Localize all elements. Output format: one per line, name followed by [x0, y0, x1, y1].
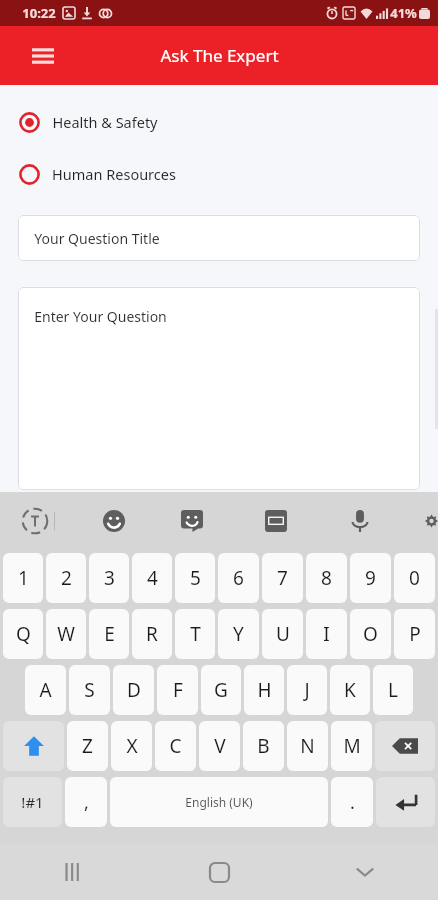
staticText: Z [82, 733, 93, 759]
staticText: V [214, 733, 226, 759]
staticText: . [350, 790, 355, 815]
staticText: E [104, 621, 115, 647]
button[interactable]: Q [3, 609, 43, 659]
staticText: A [39, 677, 52, 703]
staticText: I [323, 621, 330, 647]
button[interactable]: D [113, 665, 154, 715]
button[interactable]: GIF [257, 502, 295, 540]
staticText: 6 [233, 565, 244, 591]
button[interactable]: Home [146, 844, 292, 900]
staticText: 41% [390, 4, 417, 22]
button[interactable]: G [201, 665, 241, 715]
button[interactable]: 2 [46, 553, 86, 603]
staticText: U [276, 621, 290, 647]
button[interactable]: S [69, 665, 110, 715]
button[interactable]: Keyboard settings [425, 502, 438, 540]
button[interactable]: P [394, 609, 435, 659]
button[interactable]: W [46, 609, 86, 659]
button[interactable]: 4 [132, 553, 172, 603]
button[interactable]: Z [67, 721, 108, 771]
staticText: O [363, 621, 378, 647]
staticText: Enter Your Question [34, 307, 167, 326]
staticText: 0 [409, 565, 420, 591]
staticText: 1 [18, 565, 29, 591]
staticText: English (UK) [185, 794, 253, 810]
button[interactable]: F [157, 665, 198, 715]
staticText: 5 [190, 565, 201, 591]
button[interactable]: Stickers [173, 502, 211, 540]
button[interactable]: 1 [3, 553, 43, 603]
staticText: K [344, 677, 356, 703]
staticText: S [84, 677, 95, 703]
staticText: C [169, 733, 182, 759]
button[interactable]: Your Question Title [18, 215, 420, 261]
staticText: Human Resources [52, 164, 176, 184]
button[interactable]: Open navigation menu [22, 35, 64, 77]
button[interactable]: 8 [306, 553, 347, 603]
staticText: F [173, 677, 183, 703]
button[interactable]: 7 [262, 553, 303, 603]
button[interactable]: Emoji [95, 502, 133, 540]
button[interactable]: V [199, 721, 240, 771]
button[interactable]: J [287, 665, 327, 715]
staticText: Ask The Expert [160, 44, 279, 67]
staticText: H [257, 677, 272, 703]
button[interactable]: X [111, 721, 152, 771]
staticText: 9 [365, 565, 376, 591]
staticText: 7 [277, 565, 288, 591]
staticText: T [190, 621, 201, 647]
button[interactable]: !#1 [3, 777, 62, 827]
staticText: G [214, 677, 228, 703]
staticText: R [146, 621, 158, 647]
button[interactable]: , [65, 777, 107, 827]
button[interactable]: Human Resources [0, 159, 438, 189]
button[interactable]: M [331, 721, 372, 771]
button[interactable]: 9 [350, 553, 391, 603]
button[interactable]: Enter Your Question [18, 287, 420, 490]
button[interactable]: 6 [218, 553, 259, 603]
staticText: L [388, 677, 398, 703]
button[interactable]: 3 [89, 553, 129, 603]
button[interactable]: 0 [394, 553, 435, 603]
button[interactable]: Backspace [375, 721, 435, 771]
staticText: 2 [61, 565, 72, 591]
staticText: J [304, 677, 310, 703]
button[interactable]: I [306, 609, 347, 659]
staticText: M [343, 733, 361, 759]
button[interactable]: English (UK) [110, 777, 328, 827]
button[interactable]: Voice input [341, 502, 379, 540]
button[interactable]: B [243, 721, 284, 771]
staticText: P [409, 621, 421, 647]
staticText: 10:22 [22, 4, 56, 22]
staticText: 8 [321, 565, 332, 591]
button[interactable]: R [132, 609, 172, 659]
button[interactable]: Health & Safety [0, 107, 438, 137]
button[interactable]: T [175, 609, 215, 659]
button[interactable]: E [89, 609, 129, 659]
staticText: 3 [104, 565, 115, 591]
button[interactable]: Y [218, 609, 259, 659]
button[interactable]: Enter [376, 777, 435, 827]
button[interactable]: H [244, 665, 284, 715]
staticText: N [300, 733, 315, 759]
button[interactable]: Translate [16, 502, 54, 540]
staticText: !#1 [21, 792, 44, 812]
staticText: 4 [147, 565, 158, 591]
button[interactable]: Shift [3, 721, 64, 771]
button[interactable]: . [331, 777, 373, 827]
staticText: D [127, 677, 141, 703]
staticText: X [126, 733, 138, 759]
staticText: Your Question Title [34, 229, 160, 248]
button[interactable]: O [350, 609, 391, 659]
button[interactable]: C [155, 721, 196, 771]
button[interactable]: A [25, 665, 66, 715]
button[interactable]: L [373, 665, 413, 715]
button[interactable]: K [330, 665, 370, 715]
button[interactable]: Recent apps [0, 844, 146, 900]
button[interactable]: 5 [175, 553, 215, 603]
button[interactable]: N [287, 721, 328, 771]
button[interactable]: Hide keyboard [292, 844, 438, 900]
button[interactable]: U [262, 609, 303, 659]
staticText: Y [233, 621, 244, 647]
staticText: Health & Safety [52, 112, 158, 132]
